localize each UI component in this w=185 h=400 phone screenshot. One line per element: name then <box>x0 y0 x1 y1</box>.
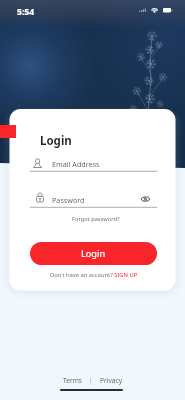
button[interactable]: Privacy <box>100 376 122 385</box>
other: Status icons <box>138 4 176 17</box>
button[interactable]: Password <box>30 188 157 208</box>
staticText: Password <box>52 195 85 205</box>
staticText: Email Address <box>52 159 100 169</box>
button[interactable]: Terms <box>63 376 82 385</box>
staticText: | <box>82 376 100 385</box>
staticText: Login <box>81 247 106 260</box>
button[interactable]: Login <box>30 242 157 265</box>
staticText: Forgot password? <box>72 215 120 223</box>
staticText: Login <box>40 133 72 149</box>
button[interactable]: Don't have an account? SIGN UP <box>30 269 157 281</box>
staticText: Don't have an account? SIGN UP <box>50 271 138 279</box>
button[interactable]: Email Address <box>30 152 157 172</box>
button[interactable]: Forgot password? <box>70 212 120 226</box>
staticText: 5:54 <box>17 6 35 18</box>
